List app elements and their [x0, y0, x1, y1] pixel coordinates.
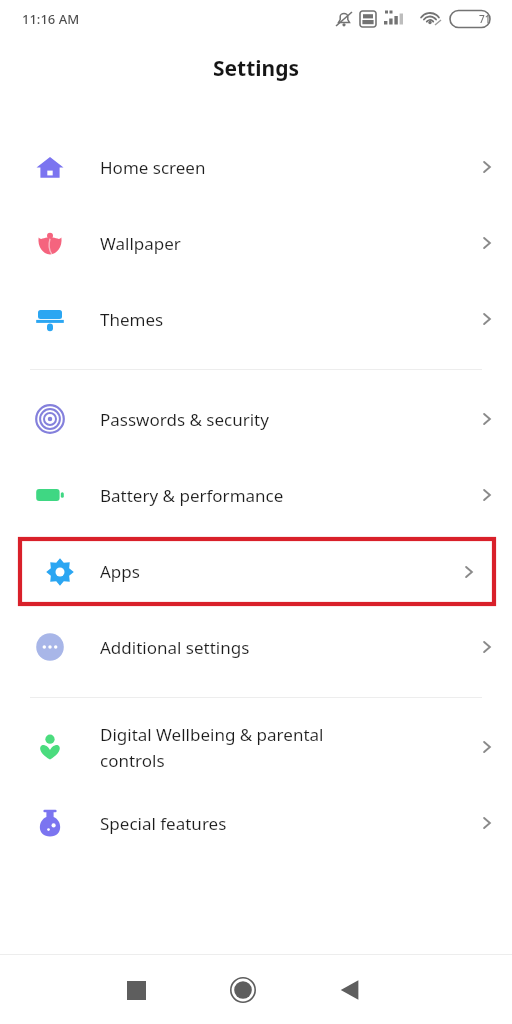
- button[interactable]: Themes: [0, 281, 512, 357]
- button[interactable]: Recent apps: [107, 961, 165, 1019]
- button[interactable]: Additional settings: [0, 609, 512, 685]
- staticText: Digital Wellbeing & parental controls: [100, 723, 446, 772]
- button[interactable]: Digital Wellbeing & parental controls: [0, 709, 512, 785]
- staticText: Settings: [0, 54, 512, 83]
- button[interactable]: Apps: [20, 539, 494, 604]
- staticText: Additional settings: [100, 636, 446, 659]
- button[interactable]: Home screen: [0, 129, 512, 205]
- staticText: Themes: [100, 308, 446, 331]
- button[interactable]: Battery & performance: [0, 457, 512, 533]
- staticText: 71: [479, 12, 491, 26]
- staticText: Wallpaper: [100, 232, 446, 255]
- button[interactable]: Passwords & security: [0, 381, 512, 457]
- staticText: Battery & performance: [100, 484, 446, 507]
- button[interactable]: Wallpaper: [0, 205, 512, 281]
- button[interactable]: Special features: [0, 785, 512, 861]
- button[interactable]: Home: [214, 961, 272, 1019]
- staticText: Home screen: [100, 156, 446, 179]
- button[interactable]: Back: [321, 961, 379, 1019]
- staticText: Special features: [100, 812, 446, 835]
- staticText: 11:16 AM: [22, 10, 80, 28]
- staticText: Passwords & security: [100, 408, 446, 431]
- staticText: Apps: [100, 560, 444, 583]
